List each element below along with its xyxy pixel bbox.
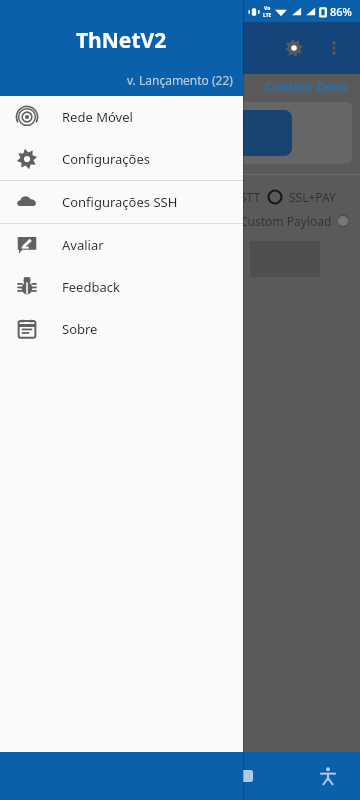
button[interactable] [16, 110, 292, 156]
staticText: Vo [264, 5, 271, 12]
staticText: LTE [263, 12, 272, 19]
staticText: 86% [330, 4, 352, 19]
button[interactable]: Sobre [0, 308, 243, 350]
button[interactable]: Configurações [0, 138, 243, 180]
button[interactable]: Recent apps [223, 752, 271, 800]
button[interactable]: More options [316, 30, 352, 66]
button[interactable]: Settings [272, 26, 316, 70]
staticText: Rede Móvel [62, 108, 133, 126]
staticText: STT [240, 189, 261, 205]
staticText: Avaliar [62, 236, 104, 254]
button[interactable] [338, 214, 348, 228]
staticText: Configurações [62, 150, 151, 168]
staticText: SSL+PAY [289, 189, 336, 205]
button[interactable]: Accessibility [304, 752, 352, 800]
button[interactable]: Rede Móvel [0, 96, 243, 138]
staticText: v. Lançamento (22) [127, 72, 233, 88]
button[interactable]: Feedback [0, 266, 243, 308]
staticText: Feedback [62, 278, 120, 296]
staticText: ThNetV2 [76, 26, 167, 55]
button[interactable]: Configurações SSH [0, 181, 243, 223]
button[interactable]: Avaliar [0, 224, 243, 266]
staticText: Configurações SSH [62, 193, 178, 211]
staticText: Sobre [62, 320, 98, 338]
staticText: Contato Dono [0, 78, 348, 94]
staticText: Custom Payload [240, 213, 332, 229]
